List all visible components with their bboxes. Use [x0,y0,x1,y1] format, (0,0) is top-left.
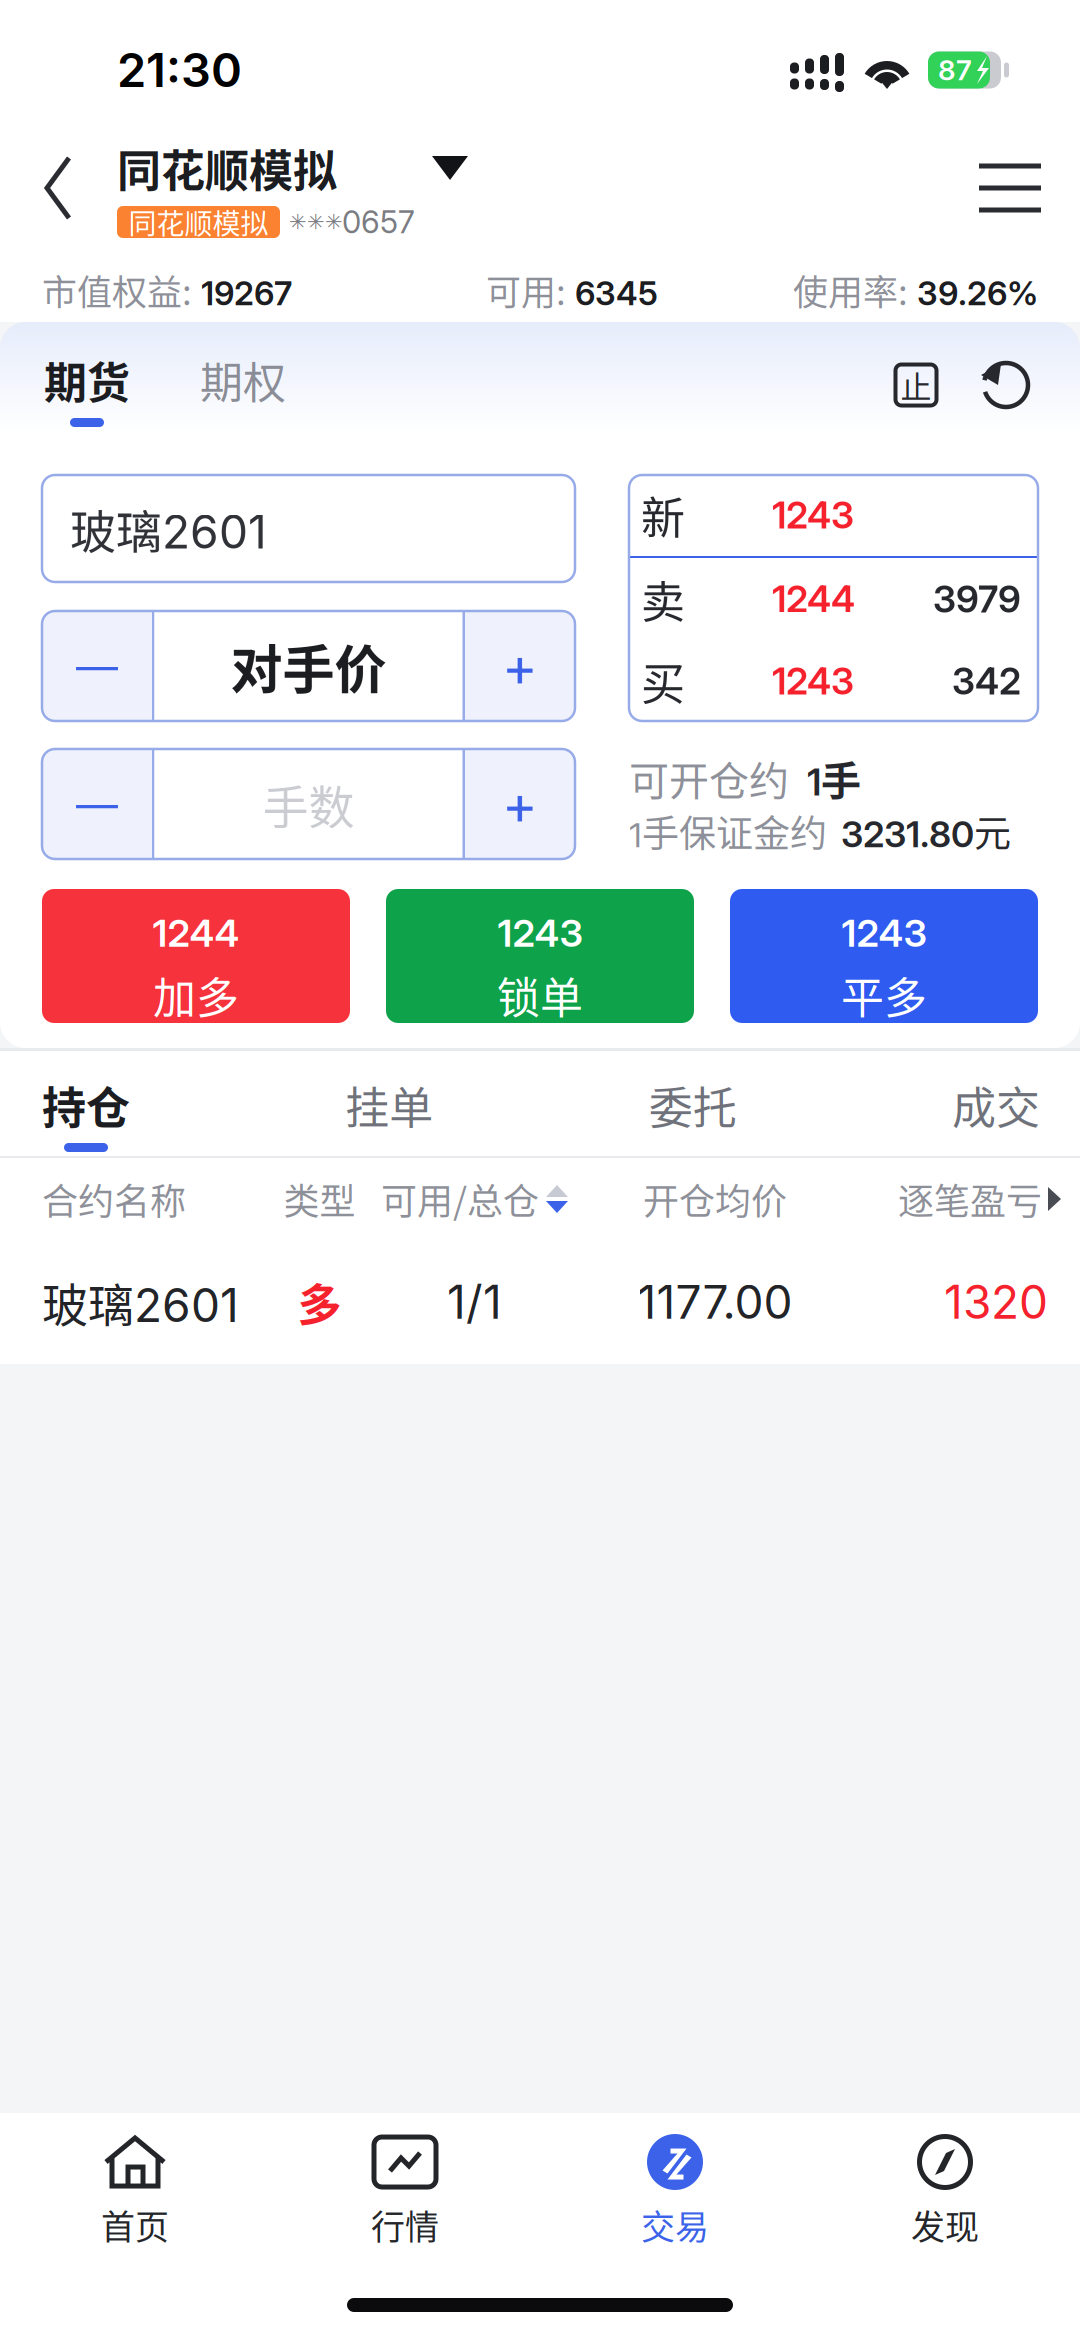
button[interactable]: 刷新 [980,352,1080,411]
staticText: 2601 [134,1277,239,1333]
button[interactable]: 行情 [270,2135,540,2295]
staticText: 1/1 [447,1274,502,1330]
staticText: 1320 [944,1274,1048,1330]
staticText: 多 [297,1270,341,1334]
staticText: 手保证金约 [642,804,827,858]
staticText: 委托 [649,1073,737,1137]
staticText: 对手价 [230,628,386,704]
staticText: — [76,779,118,829]
staticText: 加多 [153,964,239,1026]
staticText: 挂单 [345,1073,433,1137]
button[interactable]: 期货 [9,352,165,478]
staticText: 锁单 [497,964,583,1026]
staticText: 手 [821,749,861,807]
staticText: 2601 [162,504,267,560]
button[interactable]: 玻璃 [0,1240,1080,1364]
staticText: 1244 [772,577,855,621]
staticText: 止 [900,363,931,407]
staticText: 首页 [101,2200,169,2249]
staticText: 1 [807,759,821,804]
button[interactable]: 持仓 [42,1079,130,1184]
staticText: 同花顺模拟 [128,202,268,242]
staticText: 成交 [952,1073,1040,1137]
button[interactable]: 期权 [165,352,321,478]
button[interactable]: 首页 [0,2135,270,2295]
staticText: 玻璃 [42,1269,134,1335]
button[interactable]: 委托 [649,1079,737,1184]
staticText: + [502,771,538,837]
button[interactable]: 增加 [465,611,575,721]
staticText: 期货 [44,349,130,411]
staticText: 持仓 [42,1073,130,1137]
staticText: 元 [974,804,1011,858]
staticText: 39.26% [917,273,1038,313]
staticText: 1244 [152,910,239,956]
staticText: 可开仓约 [629,749,789,807]
staticText: 可用/总仓 [381,1173,539,1225]
staticText: 行情 [371,2200,439,2249]
staticText: 3979 [933,577,1021,621]
staticText: 1243 [772,659,854,703]
staticText: 买 [641,649,685,713]
staticText: ✳✳✳ [289,210,343,234]
button[interactable]: 减少 [42,749,152,859]
button[interactable]: 1243 [386,889,694,1023]
staticText: 玻璃 [70,495,162,562]
staticText: 1243 [497,910,582,956]
button[interactable]: 返回 [0,118,116,258]
staticText: 3231.80 [841,812,974,856]
button[interactable]: 发现 [810,2135,1080,2295]
staticText: 手数 [262,771,354,837]
staticText: 21:30 [117,42,242,98]
staticText: 平多 [841,964,927,1026]
staticText: 新 [641,483,685,547]
staticText: 市值权益: [42,265,192,315]
staticText: 342 [952,659,1021,703]
staticText: 1243 [841,910,926,956]
staticText: 19267 [201,273,292,313]
button[interactable]: 成交 [952,1079,1040,1184]
button[interactable]: 菜单 [940,118,1080,258]
staticText: 可用: [486,265,566,315]
button[interactable]: 1243 [730,889,1038,1023]
staticText: 交易 [641,2200,709,2249]
staticText: 发现 [911,2200,979,2249]
staticText: 1 [629,814,642,855]
button[interactable]: 减少 [42,611,152,721]
button[interactable]: 增加 [465,749,575,859]
button[interactable]: 止损止盈 [890,352,980,411]
staticText: 6345 [575,273,658,313]
staticText: 0657 [342,203,415,241]
button[interactable]: 交易 [540,2135,810,2295]
staticText: — [76,641,118,691]
staticText: 1243 [772,493,854,537]
staticText: 87 [938,53,972,87]
button[interactable]: 挂单 [345,1079,433,1184]
staticText: 1177.00 [637,1274,792,1330]
staticText: 使用率: [793,265,908,315]
staticText: 卖 [641,567,685,631]
staticText: 同花顺模拟 [117,136,337,200]
button[interactable]: 1244 [42,889,350,1023]
staticText: 逐笔盈亏 [898,1173,1042,1225]
staticText: 类型 [283,1173,355,1225]
staticText: 开仓均价 [643,1173,787,1225]
staticText: 期权 [200,349,286,411]
button[interactable]: 玻璃 [42,475,575,582]
staticText: + [502,633,538,699]
staticText: 合约名称 [42,1173,186,1225]
